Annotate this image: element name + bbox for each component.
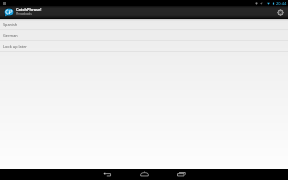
button[interactable]: Home (138, 169, 150, 180)
staticText: German (3, 33, 18, 38)
button[interactable]: Spanish (0, 19, 288, 30)
staticText: Spanish (3, 22, 18, 27)
button[interactable]: Back (101, 169, 113, 180)
staticText: Phrasebooks (16, 12, 32, 16)
staticText: CatchPhrase! (16, 7, 42, 12)
button[interactable]: Recent apps (175, 169, 187, 180)
button[interactable]: German (0, 30, 288, 41)
button[interactable]: Look up later (0, 41, 288, 52)
staticText: Look up later (3, 44, 27, 49)
button[interactable]: Settings (274, 6, 287, 19)
staticText: 20:44 (276, 1, 287, 6)
